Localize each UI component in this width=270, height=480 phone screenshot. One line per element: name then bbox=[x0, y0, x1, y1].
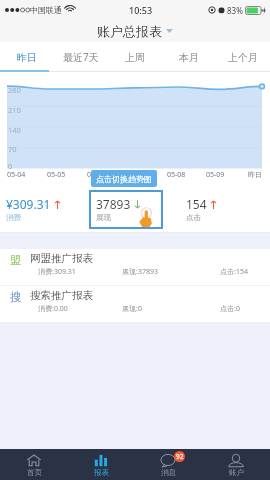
button[interactable]: 首页 bbox=[0, 449, 67, 480]
staticText: 92 bbox=[176, 452, 184, 461]
staticText: 昨日 bbox=[17, 51, 37, 64]
button[interactable]: 搜 bbox=[0, 286, 270, 323]
button[interactable]: 盟 bbox=[0, 249, 270, 286]
staticText: 消费 bbox=[6, 213, 21, 222]
staticText: 最近7天 bbox=[63, 50, 99, 64]
staticText: ¥309.31 bbox=[6, 196, 51, 212]
staticText: 账户 bbox=[229, 468, 244, 477]
button[interactable]: 报表 bbox=[67, 449, 134, 480]
staticText: 210 bbox=[8, 105, 21, 115]
staticText: 0 bbox=[8, 161, 13, 171]
staticText: 中国联通 bbox=[30, 5, 62, 15]
staticText: 点击切换趋势图 bbox=[96, 174, 152, 184]
staticText: 05-04 bbox=[7, 170, 26, 180]
staticText: 140 bbox=[8, 125, 21, 135]
staticText: 10:53 bbox=[129, 4, 153, 16]
button[interactable]: 昨日 bbox=[0, 42, 54, 72]
button[interactable]: 本月 bbox=[162, 42, 216, 72]
staticText: 搜 bbox=[10, 290, 22, 303]
staticText: 搜索推广报表 bbox=[30, 289, 93, 302]
button[interactable]: 消息 bbox=[134, 449, 202, 480]
staticText: 37893 bbox=[96, 196, 131, 212]
staticText: 消费:309.31 bbox=[38, 267, 76, 277]
staticText: 154 bbox=[186, 196, 207, 212]
staticText: 点击 bbox=[186, 213, 201, 222]
staticText: 本月 bbox=[179, 51, 199, 64]
staticText: 展现 bbox=[96, 213, 111, 222]
button[interactable]: 账户 bbox=[202, 449, 270, 480]
staticText: 上周 bbox=[125, 51, 145, 64]
button[interactable]: 最近7天 bbox=[54, 42, 108, 72]
staticText: 网盟推广报表 bbox=[30, 252, 93, 265]
staticText: 83% bbox=[227, 5, 243, 16]
button[interactable]: 154 bbox=[180, 181, 270, 233]
button[interactable]: 账户总报表 bbox=[91, 21, 179, 41]
staticText: 盟 bbox=[10, 253, 22, 266]
staticText: 消息 bbox=[161, 468, 176, 477]
button[interactable]: 点击切换趋势图 bbox=[91, 170, 157, 187]
staticText: 展现 bbox=[96, 213, 111, 222]
staticText: 展现:0 bbox=[122, 304, 142, 314]
staticText: 报表 bbox=[94, 468, 109, 477]
staticText: 昨日 bbox=[248, 170, 262, 179]
staticText: 05-09 bbox=[206, 170, 225, 180]
staticText: 消费:0.00 bbox=[38, 304, 68, 314]
staticText: 70 bbox=[8, 144, 17, 154]
staticText: 05-06 bbox=[87, 170, 106, 180]
staticText: 上个月 bbox=[228, 51, 258, 64]
staticText: 账户总报表 bbox=[97, 23, 162, 39]
staticText: 首页 bbox=[27, 468, 42, 477]
staticText: 05-08 bbox=[167, 170, 186, 180]
button[interactable]: 上个月 bbox=[216, 42, 270, 72]
button[interactable]: ¥309.31 bbox=[0, 181, 90, 233]
staticText: 05-05 bbox=[47, 170, 66, 180]
button[interactable]: 上周 bbox=[108, 42, 162, 72]
staticText: 点击:154 bbox=[220, 267, 248, 277]
button[interactable]: 37893 bbox=[89, 190, 163, 229]
button[interactable]: 37893 bbox=[90, 181, 180, 233]
staticText: 05-07 bbox=[127, 170, 146, 180]
staticText: 37893 bbox=[96, 196, 131, 212]
staticText: 280 bbox=[8, 85, 21, 95]
staticText: 展现:37893 bbox=[122, 267, 158, 277]
staticText: 点击:0 bbox=[220, 304, 240, 314]
